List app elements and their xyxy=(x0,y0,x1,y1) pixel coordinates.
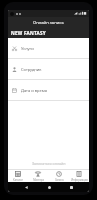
button[interactable]: Каталог xyxy=(8,170,28,182)
button[interactable]: Услуги xyxy=(8,38,89,58)
button[interactable]: Recents xyxy=(67,183,75,191)
staticText: Запись xyxy=(55,178,64,182)
button[interactable]: Сотрудник xyxy=(8,59,89,79)
staticText: NEW FANTASY xyxy=(11,30,46,36)
staticText: Записаться онлайн xyxy=(32,161,66,166)
staticText: Мастера xyxy=(33,178,44,182)
button[interactable]: Дата и время xyxy=(8,80,89,100)
staticText: Информация xyxy=(71,178,88,182)
button[interactable]: Информация xyxy=(69,170,89,182)
button[interactable]: Home xyxy=(45,183,53,191)
button[interactable]: Запись xyxy=(49,170,69,182)
staticText: Услуги xyxy=(21,46,34,51)
button[interactable]: Мастера xyxy=(28,170,48,182)
staticText: Каталог xyxy=(13,178,23,182)
staticText: Дата и время xyxy=(21,88,48,93)
staticText: Онлайн запись xyxy=(33,20,64,26)
button[interactable]: Back xyxy=(22,183,30,191)
staticText: Сотрудник xyxy=(21,67,42,72)
